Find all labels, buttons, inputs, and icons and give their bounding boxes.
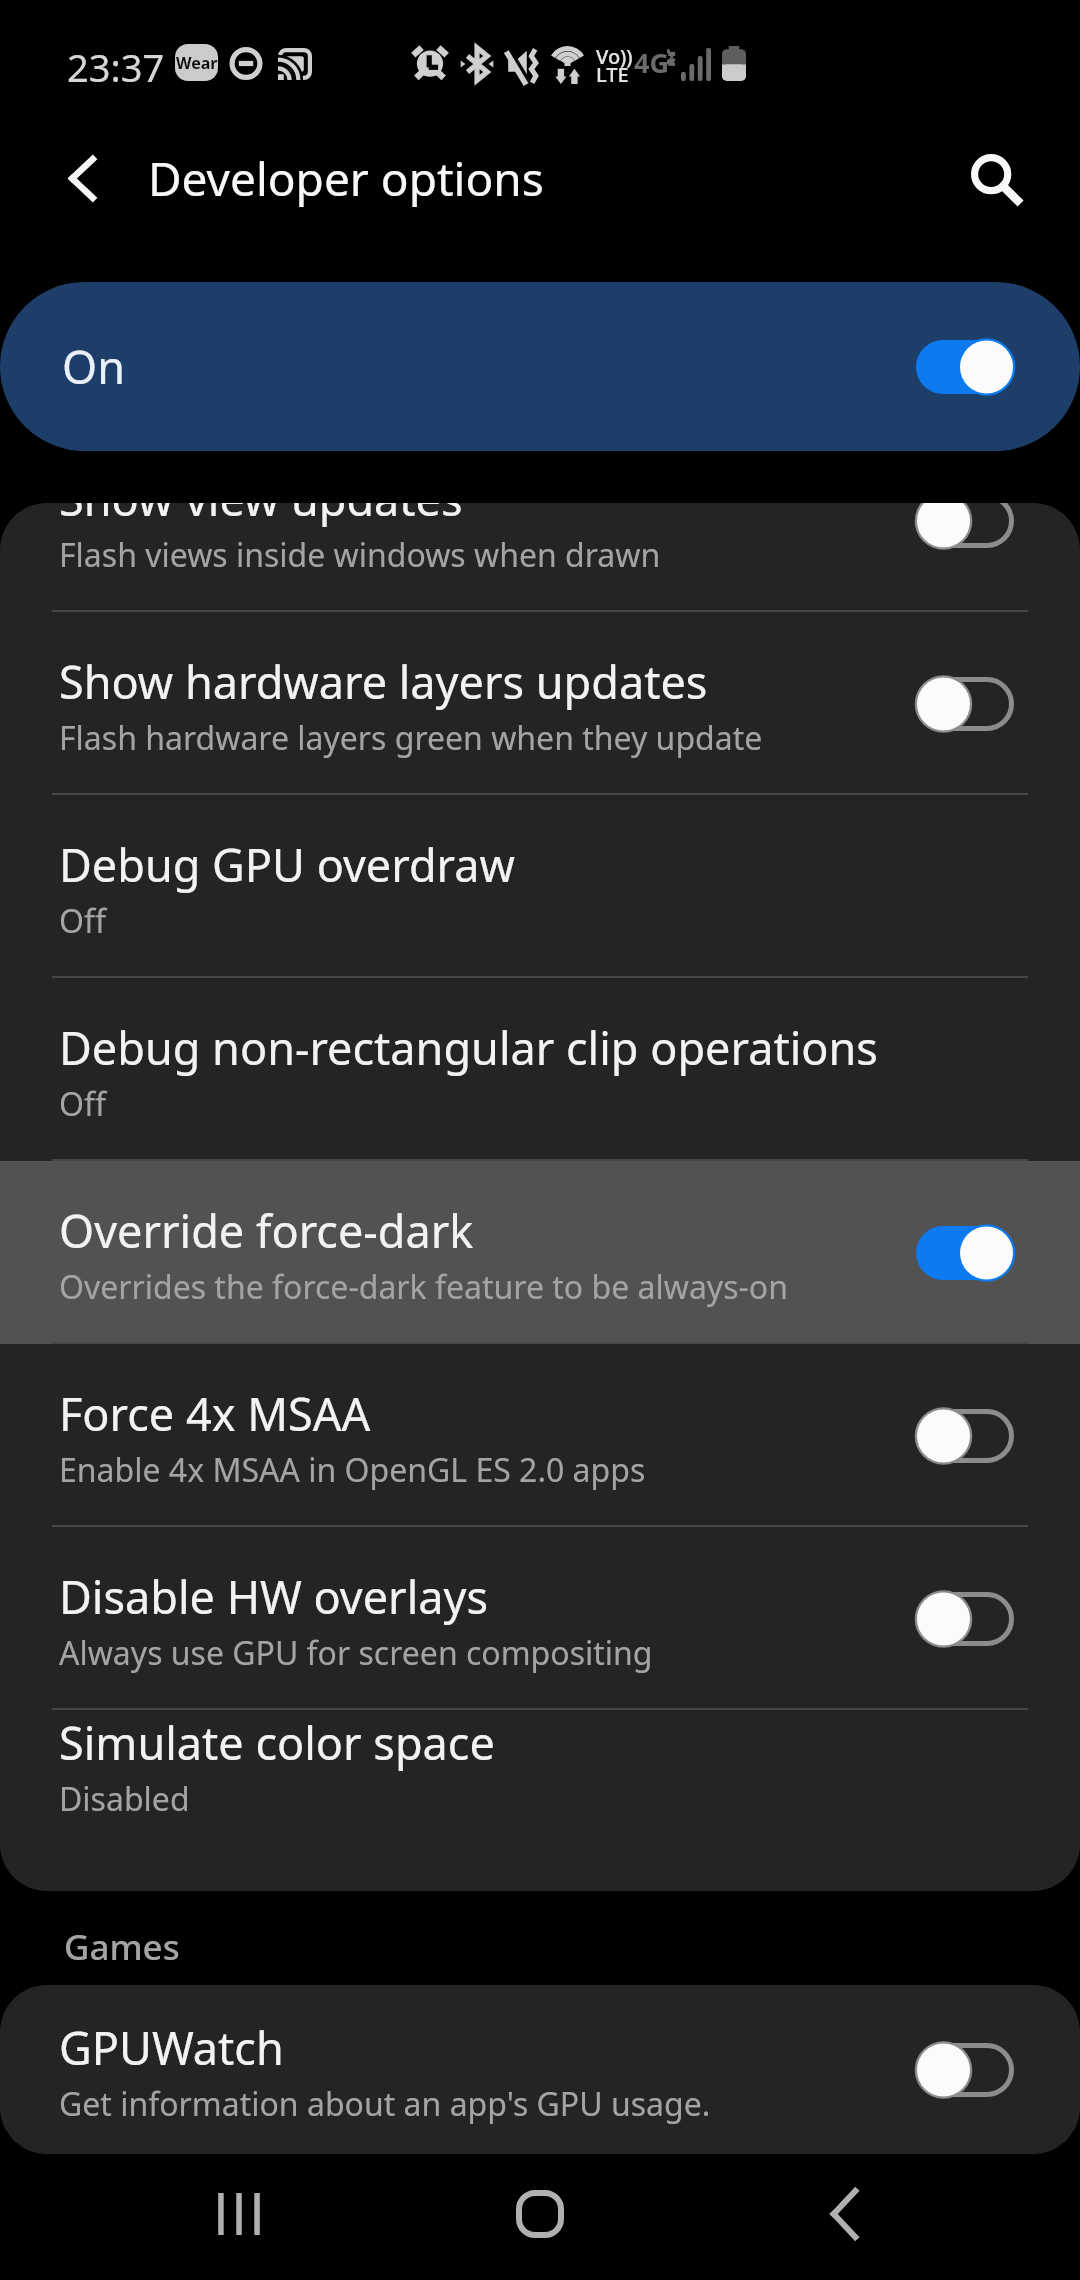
button[interactable]: GPUWatch	[0, 1985, 1080, 2154]
button[interactable]: Simulate color space	[0, 1710, 1080, 1817]
staticText: Overrides the force-dark feature to be a…	[59, 1265, 788, 1309]
staticText: 23:37	[67, 41, 165, 93]
staticText: Simulate color space	[59, 1712, 495, 1773]
staticText: Flash views inside windows when drawn	[59, 533, 661, 577]
button[interactable]: Show hardware layers updates	[0, 612, 1080, 795]
button[interactable]: Debug GPU overdraw	[0, 795, 1080, 978]
button[interactable]: Force 4x MSAA	[0, 1344, 1080, 1527]
button[interactable]: Show view updates	[0, 503, 1080, 612]
staticText: On	[62, 336, 125, 397]
button[interactable]: Back	[27, 123, 137, 233]
button[interactable]: Override force-dark	[0, 1161, 1080, 1344]
button[interactable]: Back	[784, 2154, 904, 2274]
staticText: 4G	[634, 44, 669, 81]
staticText: LTE	[596, 61, 629, 88]
staticText: Force 4x MSAA	[59, 1383, 371, 1444]
staticText: Always use GPU for screen compositing	[59, 1631, 653, 1675]
button[interactable]: On	[0, 282, 1080, 451]
button[interactable]: Home	[480, 2154, 600, 2274]
staticText: Wear	[176, 52, 218, 74]
staticText: Vo))	[596, 43, 633, 70]
staticText: Get information about an app's GPU usage…	[59, 2082, 711, 2126]
staticText: Debug non-rectangular clip operations	[59, 1017, 878, 1078]
staticText: Games	[64, 1923, 180, 1971]
staticText: Off	[59, 899, 107, 943]
staticText: Developer options	[148, 147, 544, 210]
staticText: GPUWatch	[59, 2017, 284, 2078]
button[interactable]: Debug non-rectangular clip operations	[0, 978, 1080, 1161]
staticText: Disable HW overlays	[59, 1566, 489, 1627]
staticText: Enable 4x MSAA in OpenGL ES 2.0 apps	[59, 1448, 646, 1492]
button[interactable]: Disable HW overlays	[0, 1527, 1080, 1710]
staticText: Show view updates	[59, 503, 463, 529]
staticText: Flash hardware layers green when they up…	[59, 716, 763, 760]
staticText: Debug GPU overdraw	[59, 834, 515, 895]
staticText: Override force-dark	[59, 1200, 474, 1261]
staticText: Show hardware layers updates	[59, 651, 708, 712]
staticText: Off	[59, 1082, 107, 1126]
button[interactable]: Recents	[179, 2154, 299, 2274]
button[interactable]: Search	[940, 123, 1050, 233]
staticText: Disabled	[59, 1777, 190, 1819]
